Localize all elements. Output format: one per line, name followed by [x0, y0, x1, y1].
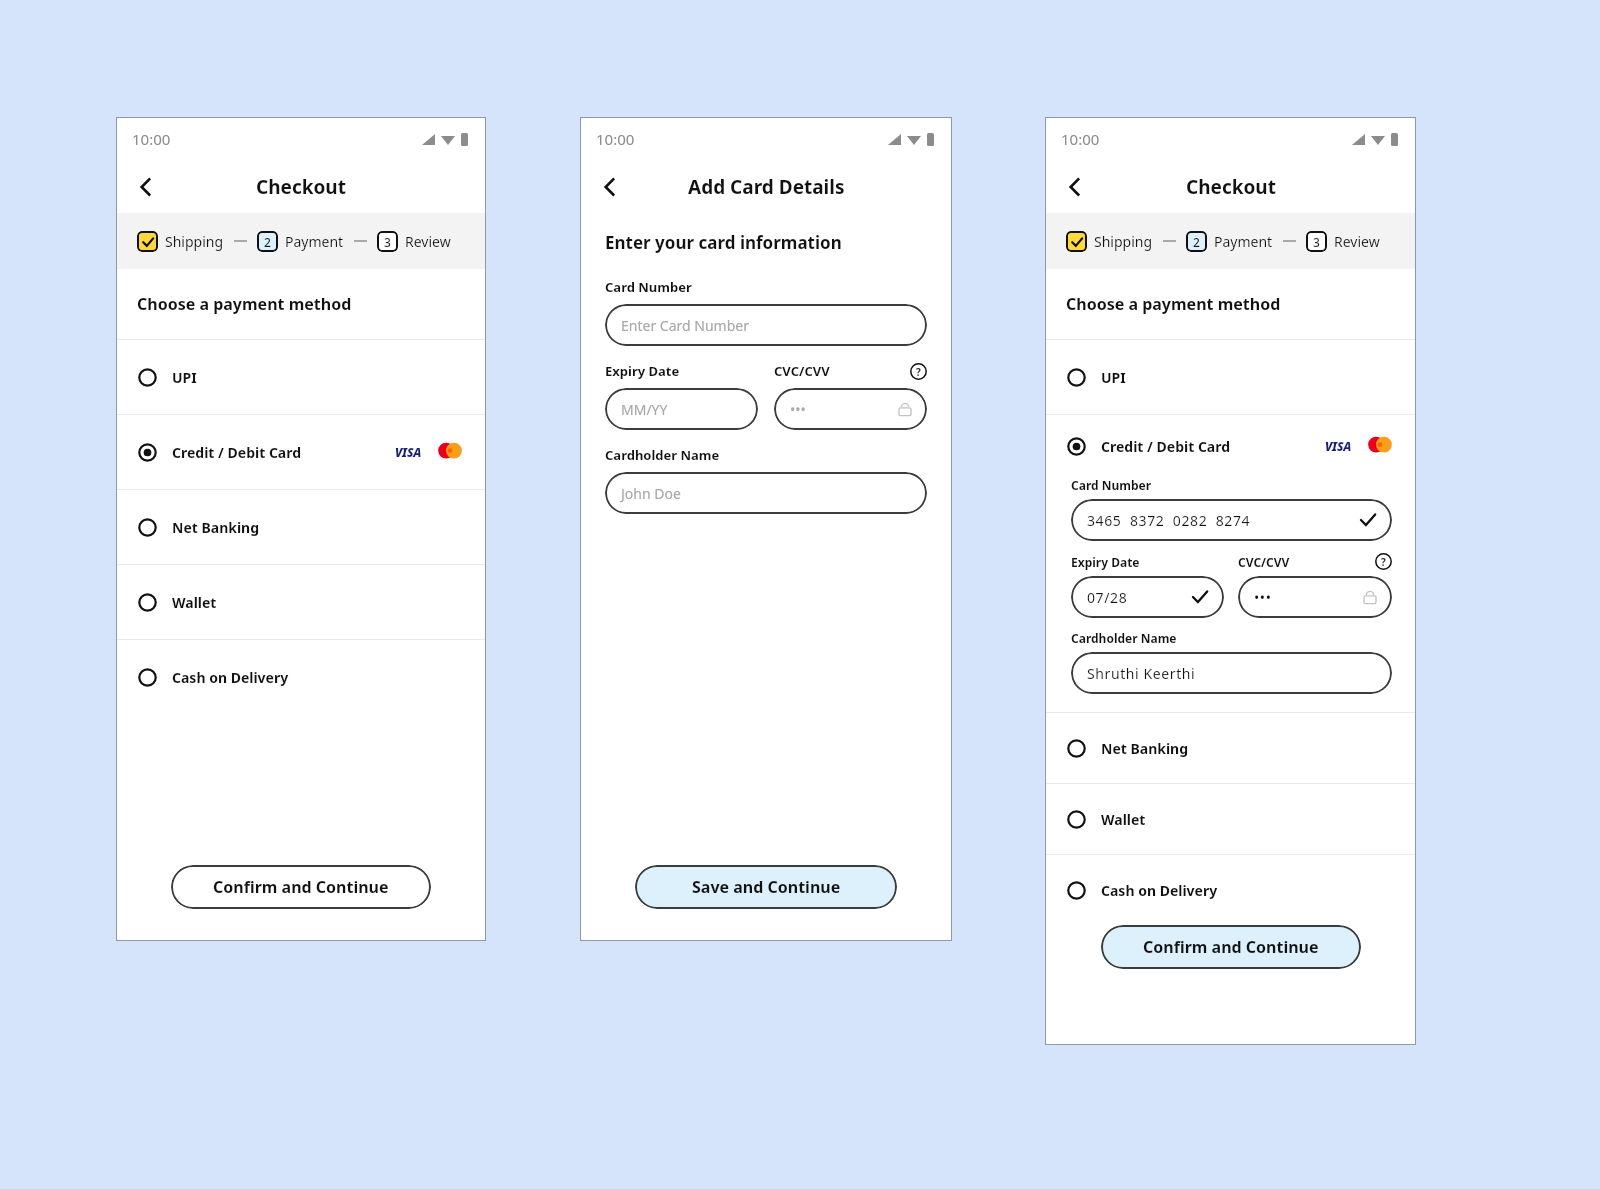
staticText: Wallet [1101, 810, 1146, 829]
button[interactable]: Shipping [1066, 231, 1153, 252]
staticText: John Doe [621, 484, 681, 503]
staticText: Net Banking [172, 518, 260, 537]
button[interactable]: Back [126, 167, 166, 207]
staticText: ••• [790, 400, 806, 419]
button[interactable]: CVC help [1375, 553, 1392, 570]
button[interactable]: 3 [377, 231, 451, 252]
staticText: Enter Card Number [621, 316, 749, 335]
staticText: 3 [1313, 234, 1320, 250]
button[interactable]: Credit / Debit Card [1045, 415, 1416, 477]
button[interactable]: 3465 8372 0282 8274 [1071, 499, 1392, 541]
staticText: Cash on Delivery [172, 668, 289, 687]
button[interactable]: Cash on Delivery [116, 640, 486, 714]
button[interactable]: Cash on Delivery [1045, 855, 1416, 925]
staticText: Payment [285, 232, 344, 251]
staticText: Checkout [256, 174, 346, 200]
button[interactable]: Back [1055, 167, 1095, 207]
staticText: Save and Continue [692, 876, 841, 898]
staticText: CVC/CVV [1238, 554, 1290, 570]
button[interactable]: CVC help [910, 363, 927, 380]
staticText: 10:00 [596, 129, 635, 149]
staticText: ? [1381, 555, 1386, 569]
staticText: Card Number [1071, 477, 1152, 493]
button[interactable]: Save and Continue [635, 865, 897, 909]
staticText: Credit / Debit Card [172, 443, 302, 462]
button[interactable]: MM/YY [605, 388, 758, 430]
staticText: Credit / Debit Card [1101, 437, 1231, 456]
button[interactable]: 2 [1186, 231, 1273, 252]
staticText: 3465 8372 0282 8274 [1087, 511, 1251, 530]
staticText: Enter your card information [605, 231, 842, 254]
button[interactable]: Shruthi Keerthi [1071, 652, 1392, 694]
button[interactable]: Wallet [1045, 784, 1416, 854]
staticText: 10:00 [132, 129, 171, 149]
staticText: 07/28 [1087, 588, 1128, 607]
staticText: Wallet [172, 593, 217, 612]
staticText: Shipping [165, 232, 224, 251]
staticText: Choose a payment method [1066, 293, 1281, 315]
staticText: Cardholder Name [1071, 630, 1177, 646]
button[interactable]: Confirm and Continue [171, 865, 431, 909]
button[interactable]: Credit / Debit Card [116, 415, 486, 489]
staticText: Review [405, 232, 451, 251]
button[interactable]: Wallet [116, 565, 486, 639]
staticText: Net Banking [1101, 739, 1189, 758]
staticText: Cardholder Name [605, 446, 720, 464]
button[interactable]: Net Banking [116, 490, 486, 564]
staticText: ? [916, 365, 921, 379]
staticText: CVC/CVV [774, 362, 830, 380]
button[interactable]: 3 [1306, 231, 1380, 252]
staticText: Expiry Date [1071, 554, 1140, 570]
staticText: Add Card Details [688, 174, 845, 200]
staticText: Card Number [605, 278, 692, 296]
button[interactable]: Enter Card Number [605, 304, 927, 346]
button[interactable]: ••• [774, 388, 927, 430]
staticText: Shipping [1094, 232, 1153, 251]
staticText: 2 [1193, 234, 1200, 250]
button[interactable]: Net Banking [1045, 713, 1416, 783]
staticText: Expiry Date [605, 362, 680, 380]
button[interactable]: John Doe [605, 472, 927, 514]
staticText: Cash on Delivery [1101, 881, 1218, 900]
staticText: Shruthi Keerthi [1087, 664, 1196, 683]
staticText: ••• [1254, 588, 1272, 607]
staticText: Confirm and Continue [213, 876, 389, 898]
staticText: Review [1334, 232, 1380, 251]
button[interactable]: Back [590, 167, 630, 207]
staticText: MM/YY [621, 400, 668, 419]
button[interactable]: 2 [257, 231, 344, 252]
staticText: 10:00 [1061, 129, 1100, 149]
button[interactable]: Confirm and Continue [1101, 925, 1361, 969]
button[interactable]: 07/28 [1071, 576, 1224, 618]
staticText: Checkout [1186, 174, 1276, 200]
staticText: Confirm and Continue [1143, 936, 1319, 958]
staticText: VISA [1325, 438, 1352, 454]
staticText: VISA [395, 444, 422, 460]
button[interactable]: UPI [1045, 340, 1416, 414]
staticText: 2 [264, 234, 271, 250]
staticText: 3 [384, 234, 391, 250]
button[interactable]: Shipping [137, 231, 224, 252]
button[interactable]: ••• [1238, 576, 1392, 618]
staticText: Payment [1214, 232, 1273, 251]
staticText: UPI [172, 368, 197, 387]
staticText: UPI [1101, 368, 1126, 387]
staticText: Choose a payment method [137, 293, 352, 315]
button[interactable]: UPI [116, 340, 486, 414]
